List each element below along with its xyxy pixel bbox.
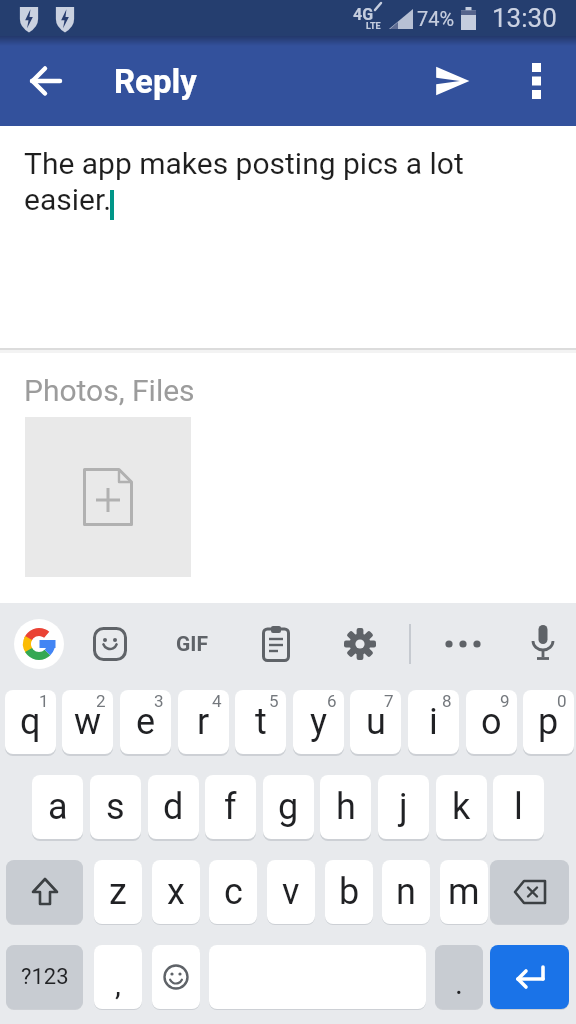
staticText: o bbox=[481, 701, 502, 743]
button[interactable]: s bbox=[90, 775, 141, 839]
button[interactable]: g bbox=[263, 775, 314, 839]
button[interactable] bbox=[338, 622, 382, 666]
button[interactable] bbox=[88, 622, 132, 666]
staticText: , bbox=[115, 967, 121, 1002]
staticText: 8 bbox=[442, 691, 452, 711]
staticText: s bbox=[106, 786, 125, 828]
button[interactable]: v bbox=[267, 860, 315, 924]
button[interactable] bbox=[6, 860, 83, 924]
staticText: r bbox=[197, 701, 210, 743]
button[interactable]: d bbox=[148, 775, 199, 839]
staticText: p bbox=[538, 701, 559, 743]
button[interactable]: GIF bbox=[164, 622, 220, 666]
staticText: GIF bbox=[176, 632, 208, 657]
button[interactable]: n bbox=[382, 860, 430, 924]
button[interactable]: . bbox=[435, 945, 483, 1009]
staticText: 13:30 bbox=[492, 3, 557, 33]
staticText: 74% bbox=[417, 7, 455, 30]
button[interactable]: l bbox=[493, 775, 544, 839]
button[interactable]: , bbox=[94, 945, 142, 1009]
button[interactable]: t bbox=[235, 690, 286, 754]
button[interactable]: x bbox=[152, 860, 200, 924]
button[interactable]: j bbox=[378, 775, 429, 839]
button[interactable] bbox=[512, 57, 560, 105]
staticText: d bbox=[163, 786, 184, 828]
staticText: q bbox=[20, 701, 41, 743]
button[interactable] bbox=[254, 622, 298, 666]
staticText: t bbox=[255, 701, 267, 743]
button[interactable]: ?123 bbox=[6, 945, 83, 1009]
staticText: x bbox=[167, 871, 185, 913]
staticText: 3 bbox=[154, 691, 164, 711]
staticText: Photos, Files bbox=[24, 373, 195, 408]
button[interactable] bbox=[16, 57, 76, 105]
staticText: y bbox=[310, 701, 328, 743]
staticText: w bbox=[74, 701, 102, 743]
staticText: Reply bbox=[114, 62, 197, 101]
staticText: ?123 bbox=[21, 964, 69, 990]
staticText: e bbox=[136, 701, 156, 743]
staticText: c bbox=[224, 871, 243, 913]
button[interactable]: o bbox=[466, 690, 517, 754]
staticText: The app makes posting pics a lot easier. bbox=[24, 146, 464, 217]
button[interactable] bbox=[152, 945, 200, 1009]
staticText: j bbox=[399, 786, 408, 828]
button[interactable]: h bbox=[320, 775, 371, 839]
button[interactable] bbox=[25, 417, 191, 577]
staticText: 6 bbox=[327, 691, 337, 711]
button[interactable] bbox=[490, 945, 569, 1009]
staticText: 5 bbox=[269, 691, 279, 711]
button[interactable]: a bbox=[32, 775, 83, 839]
staticText: g bbox=[278, 786, 299, 828]
staticText: 7 bbox=[384, 691, 394, 711]
staticText: h bbox=[336, 786, 356, 828]
button[interactable]: c bbox=[209, 860, 257, 924]
staticText: b bbox=[339, 871, 360, 913]
staticText: a bbox=[48, 786, 68, 828]
button[interactable] bbox=[521, 620, 565, 668]
staticText: 1 bbox=[39, 691, 49, 711]
staticText: LTE bbox=[366, 21, 381, 32]
staticText: z bbox=[109, 871, 127, 913]
button[interactable]: y bbox=[293, 690, 344, 754]
button[interactable]: r bbox=[178, 690, 229, 754]
staticText: k bbox=[452, 786, 471, 828]
staticText: u bbox=[366, 701, 386, 743]
button[interactable]: q bbox=[5, 690, 56, 754]
button[interactable] bbox=[434, 622, 492, 666]
staticText: i bbox=[429, 701, 438, 743]
button[interactable] bbox=[490, 860, 569, 924]
staticText: 0 bbox=[557, 691, 567, 711]
staticText: . bbox=[455, 966, 463, 1001]
staticText: m bbox=[448, 871, 480, 913]
staticText: l bbox=[514, 786, 523, 828]
button[interactable] bbox=[424, 57, 480, 105]
button[interactable]: w bbox=[62, 690, 113, 754]
staticText: n bbox=[396, 871, 416, 913]
staticText: 4 bbox=[212, 691, 222, 711]
button[interactable]: k bbox=[436, 775, 487, 839]
button[interactable]: b bbox=[325, 860, 373, 924]
staticText: v bbox=[282, 871, 300, 913]
staticText: 9 bbox=[500, 691, 510, 711]
button[interactable]: i bbox=[408, 690, 459, 754]
button[interactable]: m bbox=[440, 860, 488, 924]
staticText: 4G bbox=[353, 5, 374, 23]
button[interactable]: e bbox=[120, 690, 171, 754]
button[interactable]: z bbox=[94, 860, 142, 924]
button[interactable]: f bbox=[205, 775, 256, 839]
button[interactable]: p bbox=[523, 690, 574, 754]
staticText: f bbox=[224, 786, 237, 828]
button[interactable]: u bbox=[350, 690, 401, 754]
button[interactable] bbox=[14, 619, 64, 669]
staticText: 2 bbox=[96, 691, 106, 711]
